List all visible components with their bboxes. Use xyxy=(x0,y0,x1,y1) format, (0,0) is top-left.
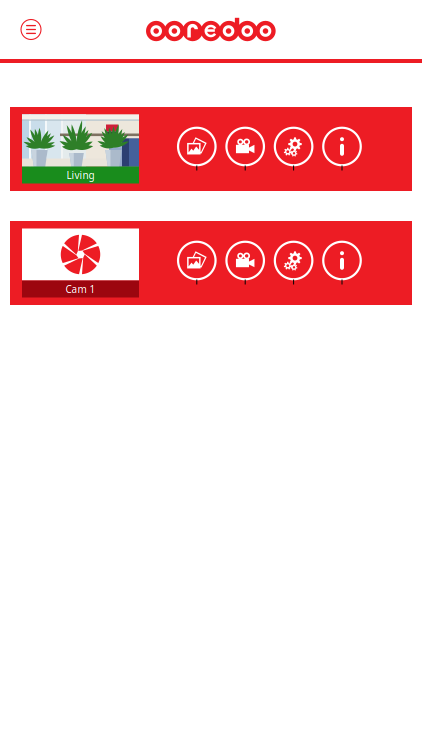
button[interactable]: Settings xyxy=(275,241,313,284)
staticText: Cam 1 xyxy=(65,282,95,296)
button[interactable]: Video xyxy=(226,241,264,284)
button[interactable]: Info xyxy=(323,241,361,284)
button[interactable]: Living xyxy=(22,114,139,183)
button[interactable]: Menu xyxy=(11,7,51,51)
staticText: Living xyxy=(66,168,94,182)
button[interactable]: Info xyxy=(323,127,361,170)
button[interactable]: Photos xyxy=(178,241,216,284)
button[interactable]: Settings xyxy=(275,127,313,170)
button[interactable]: Cam 1 xyxy=(22,228,139,297)
button[interactable]: Video xyxy=(226,127,264,170)
button[interactable]: Photos xyxy=(178,127,216,170)
